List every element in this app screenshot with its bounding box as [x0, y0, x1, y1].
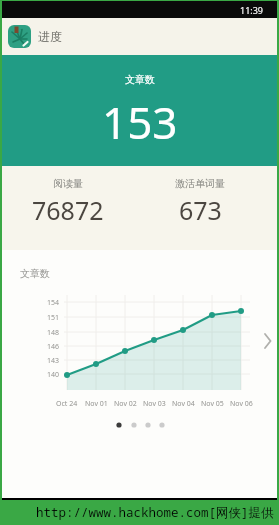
staticText: 进度: [38, 29, 62, 44]
staticText: 140: [47, 370, 60, 380]
button[interactable]: 阅读量: [2, 166, 134, 250]
staticText: 673: [179, 193, 222, 227]
staticText: Nov 02: [114, 399, 137, 409]
button[interactable]: 文章数: [2, 55, 277, 166]
staticText: 11:39: [240, 4, 264, 16]
staticText: 文章数: [125, 73, 155, 86]
staticText: Nov 05: [201, 399, 224, 409]
staticText: 153: [102, 92, 178, 152]
staticText: 激活单词量: [175, 177, 225, 190]
staticText: 76872: [32, 193, 104, 227]
button[interactable]: 进度: [2, 18, 277, 55]
staticText: Nov 04: [172, 399, 195, 409]
button[interactable]: 激活单词量: [134, 166, 266, 250]
staticText: 阅读量: [53, 177, 83, 190]
staticText: 143: [47, 356, 60, 366]
staticText: 148: [47, 328, 60, 338]
button[interactable]: http://www.hackhome.com[网侠]提供: [2, 500, 277, 525]
staticText: 151: [47, 313, 60, 323]
staticText: Oct 24: [56, 399, 78, 409]
staticText: 文章数: [20, 267, 50, 280]
staticText: http://www.hackhome.com[网侠]提供: [36, 504, 274, 521]
staticText: Nov 01: [85, 399, 108, 409]
button[interactable]: 文章数: [2, 250, 277, 498]
staticText: 154: [47, 298, 60, 308]
staticText: Nov 03: [143, 399, 166, 409]
staticText: Nov 06: [230, 399, 253, 409]
staticText: 146: [47, 342, 60, 352]
